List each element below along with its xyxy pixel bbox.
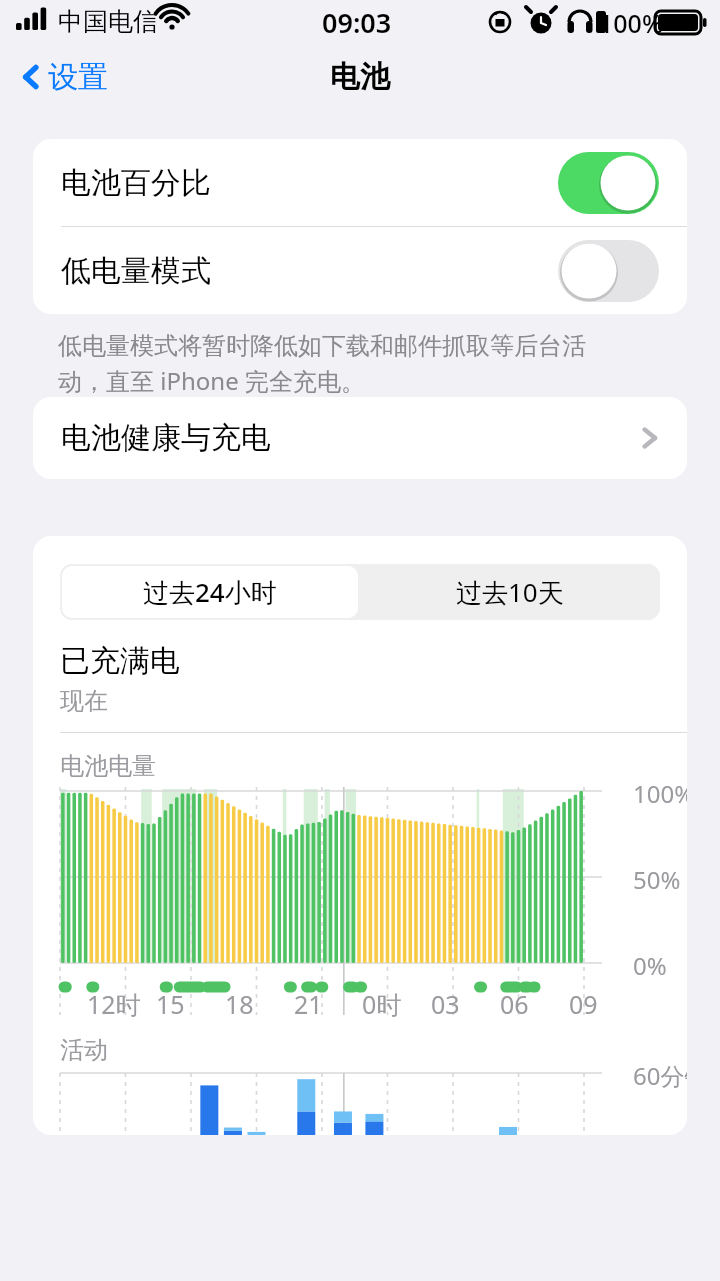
staticText: 12时 — [87, 987, 141, 1021]
staticText: 设置 — [48, 58, 108, 96]
staticText: 电池百分比 — [61, 164, 558, 202]
staticText: 06 — [500, 987, 529, 1021]
staticText: 100% — [633, 777, 687, 810]
staticText: 03 — [431, 987, 460, 1021]
button[interactable]: 设置 — [14, 52, 114, 102]
staticText: 0% — [633, 949, 667, 982]
button[interactable]: 电池百分比 — [33, 139, 687, 226]
staticText: 09:03 — [322, 4, 392, 41]
staticText: 过去10天 — [456, 574, 564, 610]
button[interactable]: 电池健康与充电 — [33, 397, 687, 479]
button[interactable]: 过去10天 — [360, 564, 660, 620]
staticText: 现在 — [60, 686, 108, 716]
button[interactable]: 过去24小时 — [62, 566, 358, 618]
staticText: 中国电信 — [58, 6, 158, 37]
staticText: 18 — [225, 987, 254, 1021]
staticText: 电池电量 — [60, 751, 156, 781]
staticText: 50% — [633, 863, 681, 896]
staticText: 09 — [569, 987, 598, 1021]
staticText: 21 — [294, 987, 323, 1021]
staticText: 过去24小时 — [143, 574, 277, 610]
staticText: 低电量模式将暂时降低如下载和邮件抓取等后台活 动，直至 iPhone 完全充电。 — [58, 331, 586, 397]
staticText: 0时 — [362, 987, 402, 1021]
staticText: 100% — [599, 6, 664, 40]
staticText: 电池 — [330, 58, 390, 96]
button[interactable]: 低电量模式 — [33, 227, 687, 314]
staticText: 低电量模式 — [61, 252, 558, 290]
staticText: 已充满电 — [60, 642, 180, 680]
staticText: 60分钟 — [633, 1059, 687, 1092]
staticText: 电池健康与充电 — [61, 419, 641, 457]
staticText: 活动 — [60, 1035, 108, 1065]
staticText: 15 — [156, 987, 185, 1021]
